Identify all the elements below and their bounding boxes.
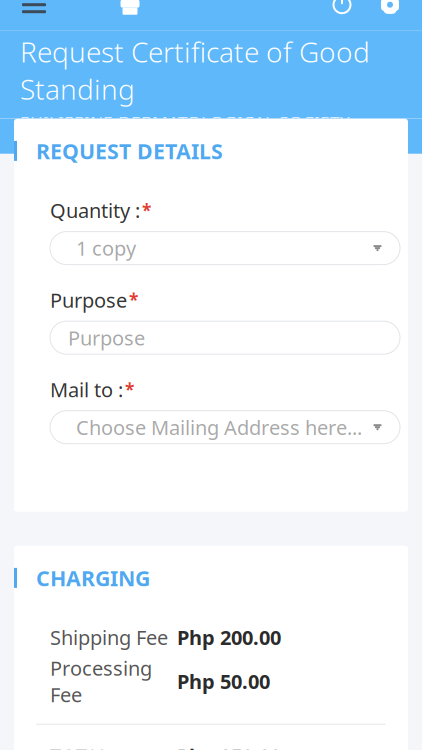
staticText: * [129,288,138,311]
staticText: Choose Mailing Address here... [76,414,362,440]
staticText: Purpose [68,324,145,351]
button[interactable]: Home [104,0,156,31]
button[interactable]: 1 copy [50,232,400,265]
staticText: Quantity : [50,197,140,224]
staticText: PHILIPPINE DERMATOLOGICAL SOCIETY [20,111,350,134]
staticText: TOTAL [50,743,109,750]
button[interactable]: Settings [366,0,414,31]
staticText: Request Certificate of Good Standing [20,33,370,107]
staticText: Processing Fee [50,655,152,708]
staticText: REQUEST DETAILS [36,137,223,165]
button[interactable]: Log out [318,0,366,31]
staticText: Purpose [50,287,127,313]
button[interactable]: Choose Mailing Address here... [50,411,400,444]
staticText: * [125,378,134,401]
staticText: Mail to : [50,376,123,403]
staticText: Php 250.00 [177,743,281,750]
staticText: CHARGING [36,564,150,592]
button[interactable]: Purpose [50,321,400,354]
staticText: Php 200.00 [177,624,281,651]
staticText: Shipping Fee [50,624,168,651]
staticText: Php 50.00 [177,668,270,694]
staticText: 1 copy [76,235,136,261]
button[interactable]: Menu [8,0,60,31]
staticText: * [142,199,151,222]
